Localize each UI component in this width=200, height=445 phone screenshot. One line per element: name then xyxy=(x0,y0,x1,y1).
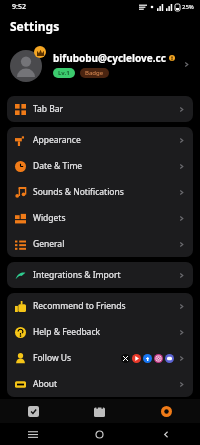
staticText: Sounds & Notifications xyxy=(33,186,124,198)
other: Open xyxy=(178,215,185,222)
button[interactable]: Integrations & Import xyxy=(7,262,193,288)
other: Open xyxy=(178,381,185,388)
button[interactable]: Help & Feedback xyxy=(7,319,193,345)
staticText: Help & Feedback xyxy=(33,326,100,338)
other: Open xyxy=(183,61,190,68)
staticText: Widgets xyxy=(33,212,66,224)
button[interactable]: General xyxy=(7,231,193,257)
other: Open xyxy=(178,303,185,310)
staticText: Tab Bar xyxy=(33,103,64,115)
other: Open xyxy=(178,355,185,362)
staticText: Appearance xyxy=(33,134,81,146)
other: Open xyxy=(178,163,185,170)
button[interactable]: Follow Us xyxy=(7,345,193,371)
button[interactable]: bifubobu@cyclelove.cc xyxy=(0,38,200,90)
staticText: bifubobu@cyclelove.cc xyxy=(53,51,166,65)
staticText: Follow Us xyxy=(33,352,72,364)
button[interactable]: Recommend to Friends xyxy=(7,293,193,319)
button[interactable]: About xyxy=(7,371,193,397)
staticText: Settings xyxy=(10,18,60,34)
button[interactable]: Settings xyxy=(133,399,200,423)
button[interactable]: Back xyxy=(133,423,200,445)
button[interactable]: Sounds & Notifications xyxy=(7,179,193,205)
button[interactable]: Tasks xyxy=(0,399,66,423)
staticText: 25% xyxy=(182,3,194,11)
button[interactable]: Home xyxy=(66,423,133,445)
button[interactable]: Date & Time xyxy=(7,153,193,179)
staticText: About xyxy=(33,378,58,390)
staticText: Badge xyxy=(85,69,104,77)
staticText: General xyxy=(33,238,65,250)
other: Open xyxy=(178,189,185,196)
staticText: Date & Time xyxy=(33,160,83,172)
staticText: 9:52 xyxy=(12,2,26,12)
button[interactable]: Tab Bar xyxy=(7,96,193,122)
other: Open xyxy=(178,241,185,248)
button[interactable]: Widgets xyxy=(7,205,193,231)
button[interactable]: Appearance xyxy=(7,127,193,153)
staticText: Integrations & Import xyxy=(33,269,121,281)
other: Open xyxy=(178,272,185,279)
other: Open xyxy=(178,329,185,336)
other: Open xyxy=(178,137,185,144)
other: Open xyxy=(178,106,185,113)
staticText: Recommend to Friends xyxy=(33,300,126,312)
staticText: Lv.1 xyxy=(58,69,70,77)
button[interactable]: Recents xyxy=(0,423,66,445)
button[interactable]: Calendar xyxy=(66,399,133,423)
